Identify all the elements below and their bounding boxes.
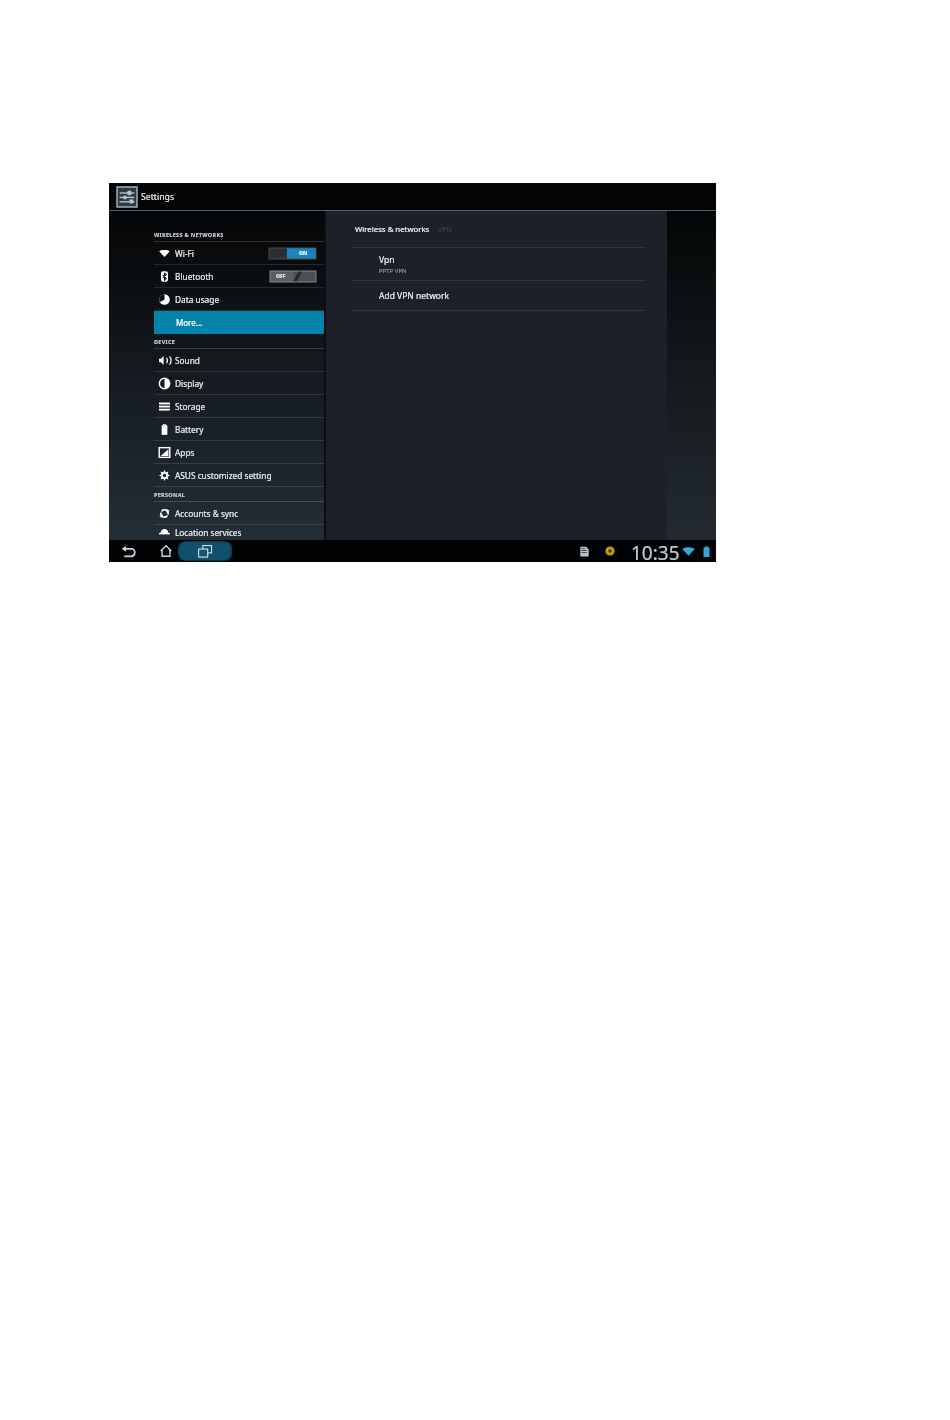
- button[interactable]: Recent apps: [177, 540, 233, 562]
- button[interactable]: Vpn: [352, 248, 645, 280]
- button[interactable]: Sound: [109, 349, 326, 372]
- staticText: ASUS customized setting: [175, 470, 272, 481]
- staticText: Sound: [175, 355, 200, 366]
- button[interactable]: Battery: [109, 418, 326, 441]
- staticText: DEVICE: [154, 338, 176, 345]
- staticText: PPTP VPN: [379, 267, 407, 275]
- staticText: OFF: [276, 273, 286, 280]
- staticText: ON: [299, 250, 308, 257]
- button[interactable]: Data usage: [109, 288, 326, 311]
- staticText: Display: [175, 378, 204, 389]
- staticText: PERSONAL: [154, 491, 186, 498]
- button[interactable]: Home: [158, 540, 174, 562]
- staticText: Apps: [175, 447, 195, 458]
- button[interactable]: Apps: [109, 441, 326, 464]
- staticText: Battery: [175, 424, 204, 435]
- button[interactable]: Back: [119, 540, 137, 562]
- button[interactable]: Add VPN network: [352, 281, 645, 310]
- button[interactable]: Wi-Fi: [109, 242, 326, 265]
- staticText: Add VPN network: [379, 290, 449, 302]
- button[interactable]: Wi-Fi on: [269, 248, 316, 259]
- staticText: Location services: [175, 527, 242, 538]
- staticText: 10:35: [631, 540, 680, 562]
- staticText: WIRELESS & NETWORKS: [154, 231, 224, 238]
- staticText: Bluetooth: [175, 271, 214, 282]
- staticText: Settings: [141, 191, 175, 203]
- button[interactable]: Accounts & sync: [109, 502, 326, 525]
- staticText: Wireless & networks: [355, 224, 430, 235]
- staticText: VPN: [438, 225, 452, 235]
- staticText: Data usage: [175, 294, 220, 305]
- staticText: Storage: [175, 401, 206, 412]
- button[interactable]: Bluetooth off: [270, 271, 316, 282]
- staticText: Vpn: [379, 254, 395, 266]
- button[interactable]: Location services: [109, 525, 326, 540]
- button[interactable]: Settings: [117, 187, 137, 207]
- button[interactable]: Storage: [109, 395, 326, 418]
- staticText: Accounts & sync: [175, 508, 239, 519]
- button[interactable]: Display: [109, 372, 326, 395]
- staticText: Wi-Fi: [175, 248, 194, 259]
- button[interactable]: ASUS customized setting: [109, 464, 326, 487]
- button[interactable]: More...: [154, 311, 325, 334]
- button[interactable]: Bluetooth: [109, 265, 326, 288]
- staticText: More...: [176, 317, 203, 328]
